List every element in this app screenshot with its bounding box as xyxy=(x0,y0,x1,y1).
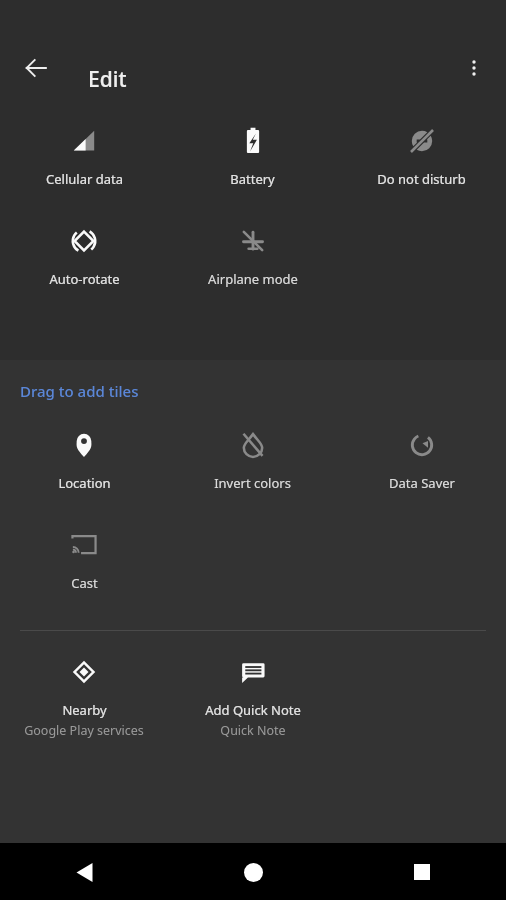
button[interactable]: Edit xyxy=(88,65,127,94)
button[interactable]: Location xyxy=(0,422,168,498)
button[interactable]: More options xyxy=(452,46,496,90)
staticText: Google Play services xyxy=(24,722,144,739)
staticText: Cast xyxy=(71,574,98,592)
button[interactable]: Home xyxy=(229,848,277,896)
staticText: Add Quick Note xyxy=(205,701,301,719)
button[interactable]: Cellular data xyxy=(0,118,168,194)
button[interactable]: Do not disturb xyxy=(337,118,506,194)
button[interactable]: Data Saver xyxy=(337,422,506,498)
staticText: Edit xyxy=(88,65,127,94)
staticText: Airplane mode xyxy=(208,270,298,288)
button[interactable]: Back xyxy=(14,46,58,90)
staticText: Quick Note xyxy=(220,722,286,739)
staticText: Drag to add tiles xyxy=(20,381,139,401)
staticText: Cellular data xyxy=(46,170,123,188)
button[interactable]: Nearby xyxy=(0,649,168,745)
staticText: Do not disturb xyxy=(377,170,466,188)
button[interactable]: Invert colors xyxy=(168,422,337,498)
staticText: Invert colors xyxy=(214,474,291,492)
button[interactable]: Airplane mode xyxy=(168,218,337,294)
button[interactable]: Back xyxy=(60,848,108,896)
button[interactable]: Add Quick Note xyxy=(168,649,337,745)
button[interactable]: Battery xyxy=(168,118,337,194)
staticText: Location xyxy=(58,474,111,492)
staticText: Data Saver xyxy=(389,474,455,492)
button[interactable]: Recent apps xyxy=(398,848,446,896)
button[interactable]: Auto-rotate xyxy=(0,218,168,294)
staticText: Auto-rotate xyxy=(49,270,120,288)
button[interactable]: Cast xyxy=(0,522,168,598)
staticText: Nearby xyxy=(62,701,107,719)
staticText: Battery xyxy=(230,170,275,188)
